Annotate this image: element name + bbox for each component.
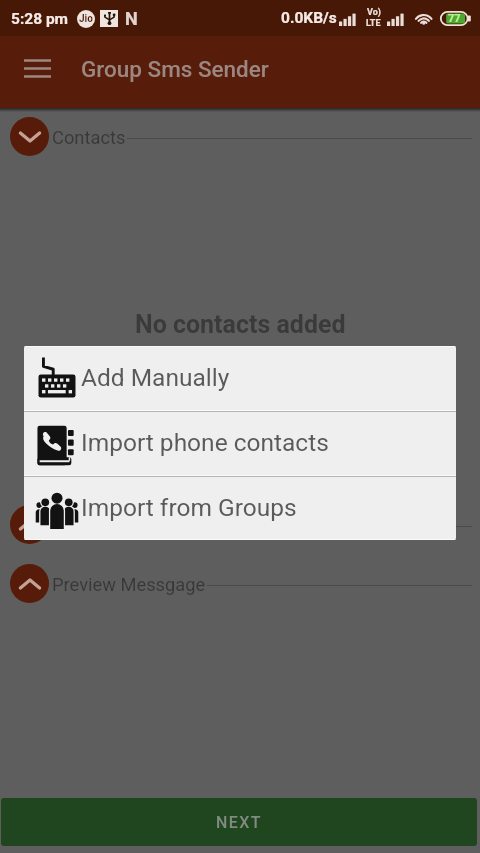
- staticText: 5:28 pm: [11, 10, 69, 28]
- staticText: Preview Messgage: [52, 574, 206, 595]
- staticText: Import from Groups: [81, 493, 297, 522]
- staticText: Group Sms Sender: [81, 56, 269, 82]
- staticText: Jio: [79, 13, 93, 25]
- button[interactable]: Expand section: [0, 117, 480, 156]
- staticText: NEXT: [216, 813, 262, 832]
- staticText: LTE: [366, 18, 381, 29]
- button[interactable]: NEXT: [1, 798, 477, 846]
- button[interactable]: Import from Groups: [24, 477, 456, 540]
- staticText: 0.0KB/s: [281, 9, 337, 27]
- button[interactable]: Collapse section: [0, 564, 480, 603]
- button[interactable]: Collapse section: [0, 505, 480, 544]
- button[interactable]: Expand section: [10, 117, 49, 156]
- staticText: Vo): [367, 7, 381, 18]
- button[interactable]: Collapse section: [10, 564, 49, 603]
- button[interactable]: Collapse section: [10, 505, 49, 544]
- button[interactable]: Open navigation menu: [12, 43, 62, 93]
- staticText: N: [125, 8, 138, 29]
- button[interactable]: Add Manually: [24, 346, 456, 410]
- button[interactable]: Import phone contacts: [24, 412, 456, 475]
- staticText: 77: [448, 12, 461, 25]
- staticText: Message Body: [52, 515, 172, 536]
- staticText: Contacts: [52, 127, 126, 148]
- staticText: Add Manually: [81, 363, 230, 392]
- staticText: Import phone contacts: [81, 428, 329, 457]
- staticText: No contacts added: [135, 310, 346, 339]
